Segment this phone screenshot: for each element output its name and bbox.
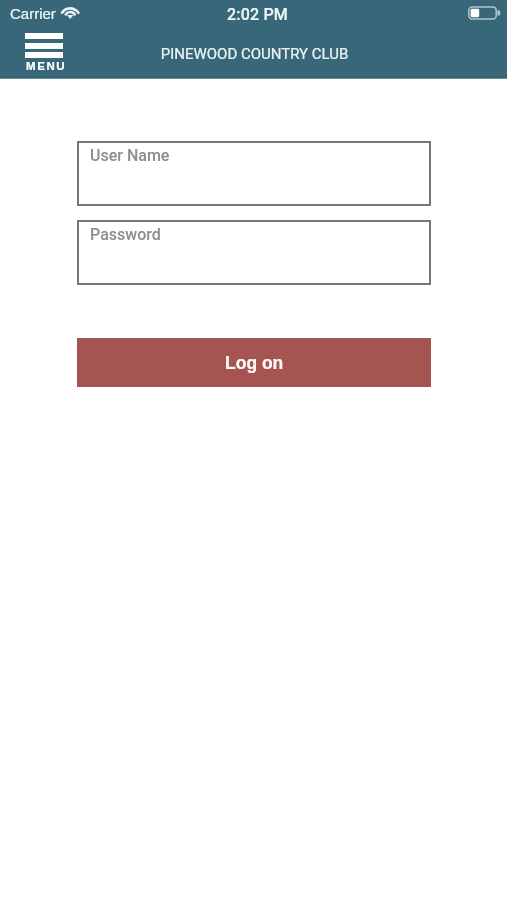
staticText: Carrier <box>10 5 56 22</box>
staticText: 2:02 PM <box>4 5 507 24</box>
button[interactable]: User Name <box>77 141 431 206</box>
button[interactable]: Open navigation menu <box>25 33 64 71</box>
button[interactable]: Password <box>77 220 431 285</box>
staticText: User Name <box>90 146 170 165</box>
staticText: Log on <box>225 353 284 373</box>
staticText: PINEWOOD COUNTRY CLUB <box>1 45 507 63</box>
staticText: MENU <box>26 60 67 73</box>
staticText: Password <box>90 225 161 244</box>
button[interactable]: Log on <box>77 338 431 387</box>
